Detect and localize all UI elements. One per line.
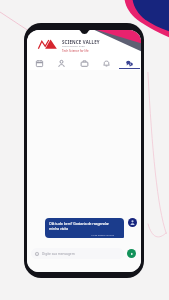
staticText: SCIENCE VALLEY [62,39,100,45]
button[interactable]: Profile [51,56,72,70]
button[interactable]: Send message [127,249,136,258]
button[interactable]: Notifications [96,56,117,70]
button[interactable]: Digite sua mensagem [31,248,124,259]
staticText: Tech Science for life [62,49,89,53]
button[interactable]: Services [74,56,95,70]
staticText: 10 de agosto às 9:00 [49,233,114,236]
staticText: TECHNOLOGY PARK [62,45,85,48]
staticText: Olá tudo bem? Gostaria de reagendar minh… [49,221,120,231]
button[interactable]: Calendar [29,56,50,70]
button[interactable]: Chat [119,56,140,70]
button[interactable]: Contact avatar [128,218,137,227]
button[interactable]: Olá tudo bem? Gostaria de reagendar minh… [45,218,124,238]
staticText: Digite sua mensagem [42,252,75,256]
